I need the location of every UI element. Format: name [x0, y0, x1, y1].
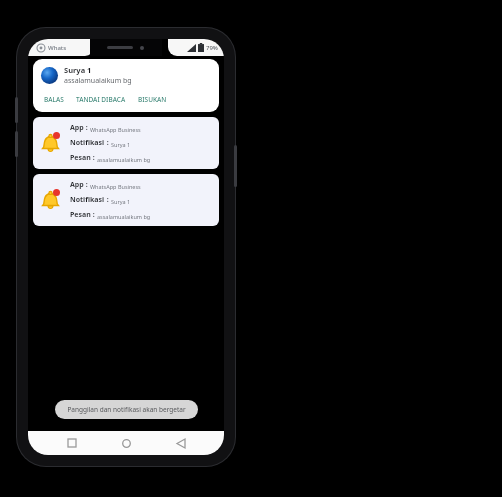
staticText: : [105, 195, 111, 205]
staticText: Surya 1 [64, 65, 92, 75]
staticText: WhatsApp Business [90, 183, 141, 190]
staticText: Panggilan dan notifikasi akan bergetar [67, 405, 186, 414]
staticText: Pesan [70, 210, 91, 220]
staticText: Notifikasi [70, 138, 105, 148]
staticText: assalamualaikum bg [97, 213, 151, 220]
staticText: : [84, 123, 90, 133]
staticText: assalamualaikum bg [64, 76, 132, 86]
staticText: BALAS [44, 95, 64, 104]
staticText: BISUKAN [138, 95, 167, 104]
staticText: Surya 1 [111, 198, 131, 205]
staticText: assalamualaikum bg [97, 156, 151, 163]
staticText: : [91, 153, 97, 163]
button[interactable]: Home [115, 432, 137, 454]
staticText: App [70, 123, 84, 133]
button[interactable]: App [33, 174, 219, 226]
staticText: : [91, 210, 97, 220]
button[interactable]: Surya 1 [33, 59, 219, 112]
button[interactable]: BALAS [41, 93, 67, 106]
staticText: 79% [206, 44, 218, 52]
staticText: App [70, 180, 84, 190]
staticText: Whats [48, 44, 67, 52]
staticText: TANDAI DIBACA [76, 95, 126, 104]
button[interactable]: BISUKAN [135, 93, 170, 106]
staticText: Surya 1 [111, 141, 131, 148]
button[interactable]: App [33, 117, 219, 169]
button[interactable]: TANDAI DIBACA [73, 93, 129, 106]
staticText: Notifikasi [70, 195, 105, 205]
staticText: Pesan [70, 153, 91, 163]
staticText: : [84, 180, 90, 190]
button[interactable]: Recent apps [61, 432, 83, 454]
staticText: : [105, 138, 111, 148]
staticText: WhatsApp Business [90, 126, 141, 133]
button[interactable]: Back [170, 432, 192, 454]
